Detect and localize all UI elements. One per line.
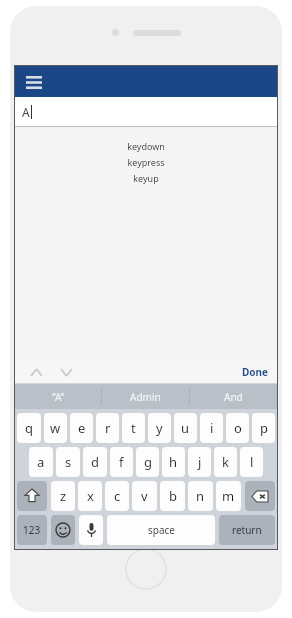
staticText: Done xyxy=(242,365,269,379)
button[interactable]: r xyxy=(96,413,119,443)
staticText: keydown xyxy=(127,140,165,152)
staticText: Admin xyxy=(130,390,161,404)
button[interactable]: Previous xyxy=(25,361,47,383)
button[interactable]: Menu xyxy=(15,66,277,97)
button[interactable]: q xyxy=(17,413,41,443)
button[interactable]: Done xyxy=(242,365,269,379)
staticText: u xyxy=(181,419,190,437)
button[interactable]: o xyxy=(226,413,249,443)
button[interactable]: b xyxy=(160,481,185,511)
button[interactable]: f xyxy=(110,447,133,477)
button[interactable]: “A” xyxy=(15,384,101,409)
button[interactable]: return xyxy=(219,515,275,545)
button[interactable]: j xyxy=(188,447,211,477)
button[interactable]: Next xyxy=(55,361,77,383)
staticText: return xyxy=(232,523,262,537)
button[interactable]: Shift xyxy=(17,481,47,511)
staticText: x xyxy=(87,487,94,505)
button[interactable]: 123 xyxy=(17,515,47,545)
staticText: And xyxy=(224,390,243,404)
staticText: “A” xyxy=(52,390,65,404)
staticText: w xyxy=(50,419,61,437)
staticText: s xyxy=(65,453,72,471)
staticText: v xyxy=(141,487,148,505)
button[interactable]: n xyxy=(188,481,213,511)
staticText: i xyxy=(210,419,214,437)
staticText: h xyxy=(169,453,178,471)
button[interactable]: c xyxy=(105,481,129,511)
button[interactable]: g xyxy=(136,447,159,477)
button[interactable]: u xyxy=(174,413,197,443)
button[interactable]: t xyxy=(122,413,145,443)
staticText: keypress xyxy=(127,156,165,168)
button[interactable]: a xyxy=(29,447,53,477)
button[interactable]: w xyxy=(44,413,67,443)
button[interactable]: Menu xyxy=(24,72,44,92)
staticText: m xyxy=(222,487,235,505)
staticText: A xyxy=(22,104,30,120)
button[interactable]: Dictate xyxy=(79,515,103,545)
staticText: p xyxy=(260,419,268,437)
staticText: e xyxy=(78,419,86,437)
staticText: y xyxy=(156,419,163,437)
button[interactable]: m xyxy=(216,481,241,511)
staticText: j xyxy=(198,453,202,471)
button[interactable]: z xyxy=(51,481,75,511)
staticText: n xyxy=(196,487,205,505)
button[interactable]: v xyxy=(132,481,157,511)
staticText: l xyxy=(250,453,254,471)
button[interactable]: p xyxy=(252,413,275,443)
staticText: space xyxy=(148,523,175,537)
staticText: r xyxy=(105,419,111,437)
button[interactable]: And xyxy=(190,384,277,409)
staticText: keyup xyxy=(133,172,159,184)
button[interactable]: h xyxy=(162,447,185,477)
staticText: c xyxy=(114,487,121,505)
button[interactable]: k xyxy=(214,447,237,477)
button[interactable]: y xyxy=(148,413,171,443)
button[interactable]: Backspace xyxy=(245,481,275,511)
button[interactable]: s xyxy=(56,447,80,477)
staticText: g xyxy=(144,453,152,471)
staticText: o xyxy=(234,419,242,437)
button[interactable]: space xyxy=(107,515,215,545)
staticText: 123 xyxy=(23,523,41,537)
staticText: a xyxy=(37,453,45,471)
staticText: b xyxy=(169,487,177,505)
button[interactable]: d xyxy=(83,447,107,477)
button[interactable]: e xyxy=(70,413,93,443)
button[interactable]: x xyxy=(78,481,102,511)
button[interactable]: Emoji xyxy=(51,515,75,545)
button[interactable]: i xyxy=(200,413,223,443)
button[interactable]: l xyxy=(240,447,263,477)
staticText: k xyxy=(222,453,229,471)
staticText: q xyxy=(25,419,33,437)
staticText: t xyxy=(131,419,136,437)
staticText: f xyxy=(119,453,124,471)
staticText: z xyxy=(60,487,67,505)
staticText: d xyxy=(91,453,99,471)
button[interactable]: Admin xyxy=(102,384,189,409)
